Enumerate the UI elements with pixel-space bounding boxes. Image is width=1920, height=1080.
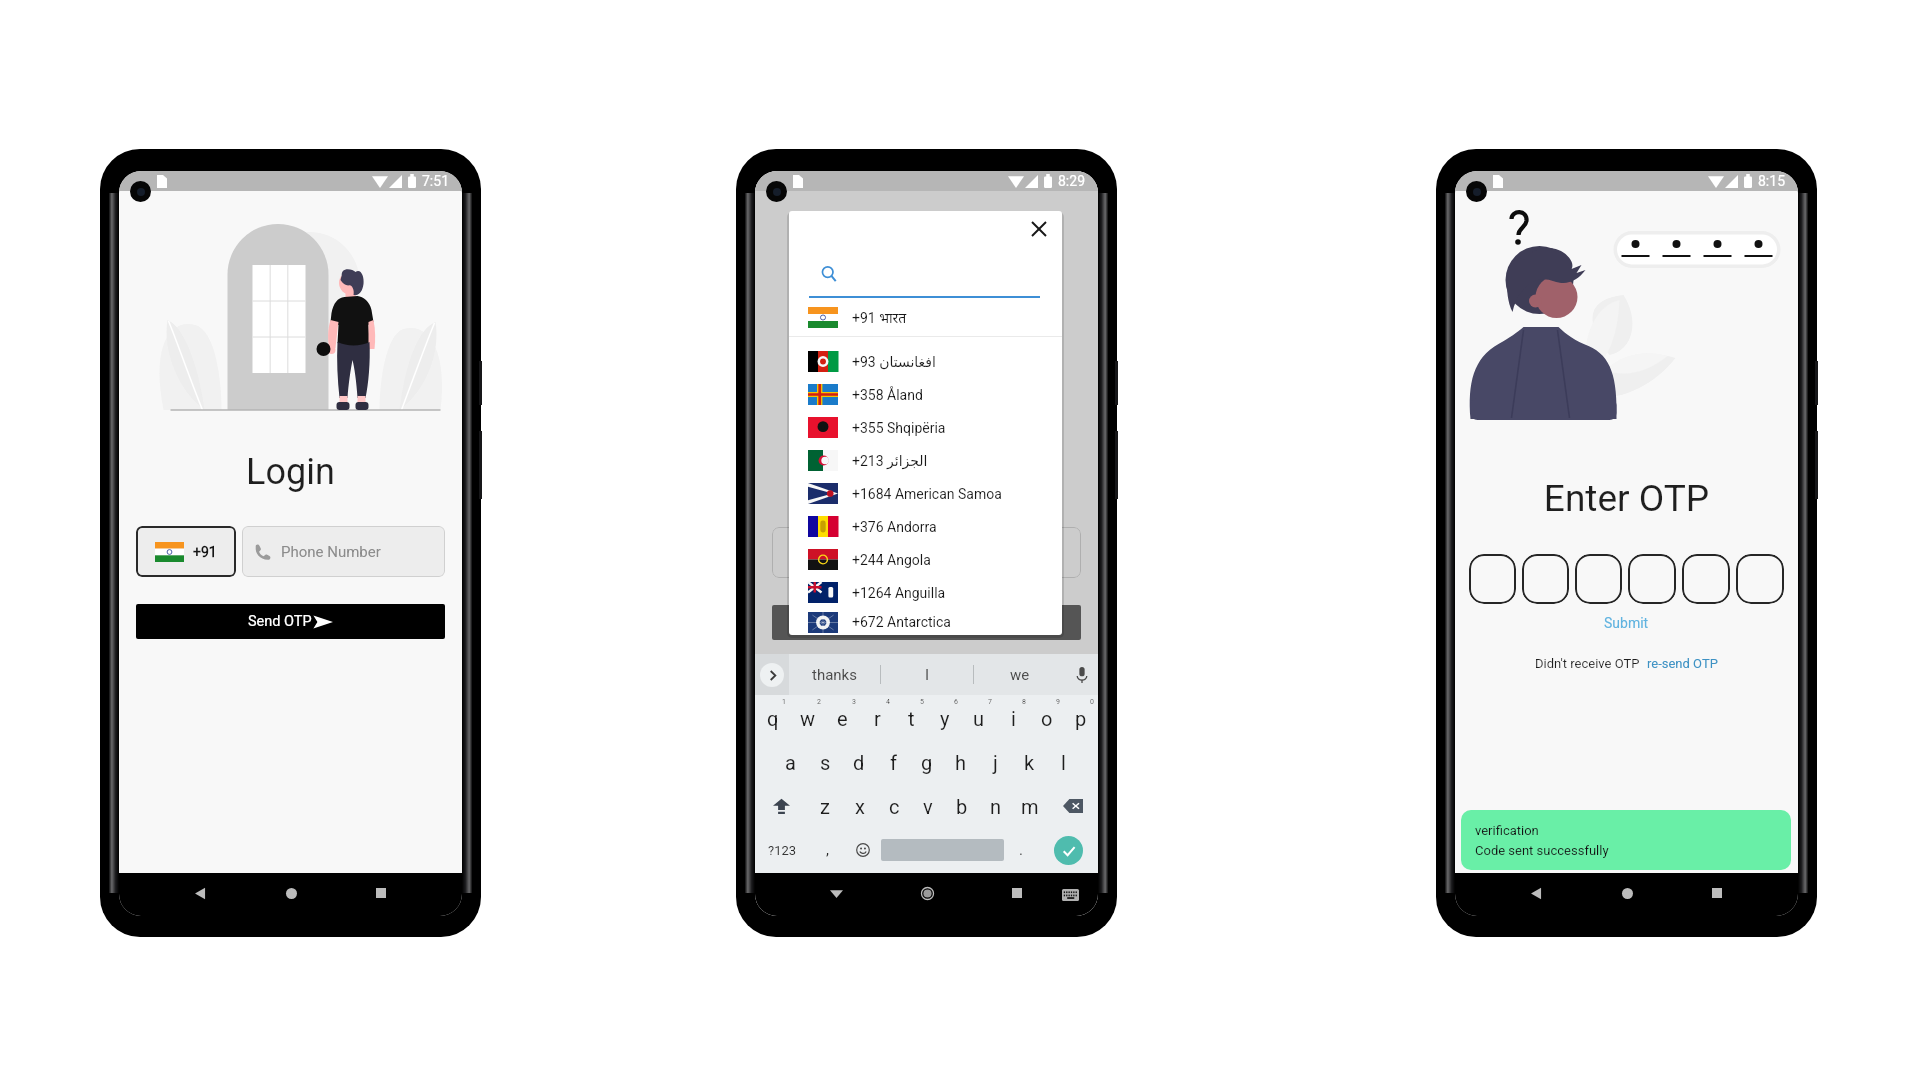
button[interactable]: c (877, 785, 911, 827)
button[interactable]: v (911, 785, 945, 827)
staticText: l (1061, 751, 1066, 774)
button[interactable]: Recents (1002, 878, 1032, 908)
button[interactable]: d (842, 741, 876, 783)
button[interactable]: p (1064, 697, 1098, 739)
button[interactable]: I (881, 654, 973, 695)
button[interactable]: ?123 (755, 829, 810, 871)
button[interactable]: , (810, 829, 844, 871)
staticText: r (874, 707, 881, 730)
staticText: t (908, 707, 915, 730)
button[interactable]: we (974, 654, 1066, 695)
button[interactable]: s (808, 741, 842, 783)
button[interactable]: . (1004, 829, 1038, 871)
button[interactable]: w (790, 697, 825, 739)
button[interactable]: t (894, 697, 928, 739)
button[interactable]: +93 افغانستان (789, 345, 1062, 378)
button[interactable]: e (825, 697, 860, 739)
button[interactable]: i (996, 697, 1030, 739)
button[interactable]: o (1030, 697, 1064, 739)
button[interactable]: Home (276, 878, 306, 908)
button[interactable]: Phone Number (242, 526, 445, 577)
staticText: 4 (886, 698, 890, 706)
button[interactable]: Enter (1038, 829, 1098, 871)
button[interactable]: +376 Andorra (789, 510, 1062, 543)
button[interactable]: re-send OTP (1647, 656, 1718, 671)
button[interactable]: Recents (1702, 878, 1732, 908)
button[interactable]: u (962, 697, 996, 739)
button[interactable]: Back (821, 878, 851, 908)
button[interactable]: Recents (366, 878, 396, 908)
button[interactable]: f (876, 741, 910, 783)
button[interactable]: +91 (136, 526, 236, 577)
staticText: +244 Angola (852, 552, 931, 568)
button[interactable]: +1684 American Samoa (789, 477, 1062, 510)
staticText: v (923, 795, 933, 818)
button[interactable]: +672 Antarctica (789, 609, 1062, 635)
button[interactable]: OTP digit 4 (1628, 554, 1676, 604)
button[interactable]: OTP digit 3 (1575, 554, 1622, 604)
button[interactable]: OTP digit 2 (1522, 554, 1569, 604)
button[interactable]: Emoji (844, 829, 881, 871)
staticText: +91 भारत (852, 308, 907, 327)
staticText: 0 (1090, 698, 1094, 706)
button[interactable]: j (978, 741, 1012, 783)
button[interactable]: Back (1521, 878, 1551, 908)
staticText: q (767, 707, 779, 730)
button[interactable]: h (944, 741, 978, 783)
staticText: re-send OTP (1647, 656, 1718, 671)
button[interactable]: +355 Shqipëria (789, 411, 1062, 444)
button[interactable]: g (910, 741, 944, 783)
button[interactable]: b (945, 785, 979, 827)
button[interactable]: Home (1612, 878, 1642, 908)
button[interactable]: a (773, 741, 808, 783)
button[interactable]: Back (185, 878, 215, 908)
staticText: k (1024, 751, 1035, 774)
button[interactable]: +358 Åland (789, 378, 1062, 411)
button[interactable]: q (755, 697, 790, 739)
staticText: g (921, 751, 933, 774)
staticText: +355 Shqipëria (852, 420, 946, 436)
button[interactable]: +213 الجزائر (789, 444, 1062, 477)
button[interactable]: Voice input (1066, 654, 1098, 695)
button[interactable]: +91 भारत (789, 298, 1062, 336)
button[interactable]: n (979, 785, 1013, 827)
button[interactable]: Close (1027, 217, 1051, 241)
button[interactable]: OTP digit 5 (1682, 554, 1730, 604)
button[interactable]: z (807, 785, 842, 827)
button[interactable]: thanks (789, 654, 880, 695)
staticText: Didn't receive OTP (1535, 656, 1640, 671)
staticText: s (820, 751, 831, 774)
staticText: +672 Antarctica (852, 614, 951, 630)
staticText: , (826, 841, 829, 859)
button[interactable]: r (860, 697, 894, 739)
staticText: we (1010, 666, 1030, 684)
staticText: a (785, 751, 796, 774)
staticText: 9 (1056, 698, 1060, 706)
staticText: 5 (920, 698, 924, 706)
button[interactable]: +1264 Anguilla (789, 576, 1062, 609)
staticText: w (800, 707, 816, 730)
button[interactable]: OTP digit 1 (1469, 554, 1516, 604)
button[interactable]: Hide keyboard (1058, 883, 1082, 907)
staticText: Login (119, 451, 462, 493)
button[interactable]: x (842, 785, 877, 827)
button[interactable]: Shift (755, 785, 807, 827)
staticText: 3 (852, 698, 856, 706)
button[interactable]: m (1013, 785, 1047, 827)
staticText: o (1041, 707, 1053, 730)
staticText: e (837, 707, 848, 730)
button[interactable]: OTP digit 6 (1736, 554, 1784, 604)
button[interactable]: Submit (1596, 613, 1657, 633)
button[interactable]: l (1046, 741, 1080, 783)
button[interactable]: Backspace (1047, 785, 1098, 827)
button[interactable]: y (928, 697, 962, 739)
staticText: 2 (817, 698, 821, 706)
staticText: i (1011, 707, 1016, 730)
staticText: +93 افغانستان (852, 354, 936, 370)
button[interactable]: More suggestions (755, 654, 789, 695)
button[interactable]: +244 Angola (789, 543, 1062, 576)
button[interactable]: k (1012, 741, 1046, 783)
button[interactable]: Send OTP (136, 604, 445, 639)
button[interactable]: Home (912, 878, 942, 908)
